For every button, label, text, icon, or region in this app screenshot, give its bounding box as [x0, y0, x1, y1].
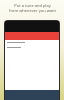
staticText: from whenever you want [9, 8, 56, 13]
staticText: Put a tune and play [14, 3, 51, 8]
